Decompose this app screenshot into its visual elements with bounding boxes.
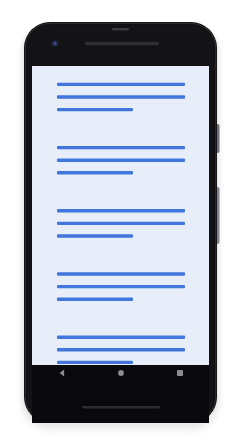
button[interactable]: Recents (150, 365, 209, 381)
button[interactable]: Back (32, 365, 91, 381)
button[interactable]: Document content (32, 66, 209, 365)
button[interactable]: Home (91, 365, 150, 381)
